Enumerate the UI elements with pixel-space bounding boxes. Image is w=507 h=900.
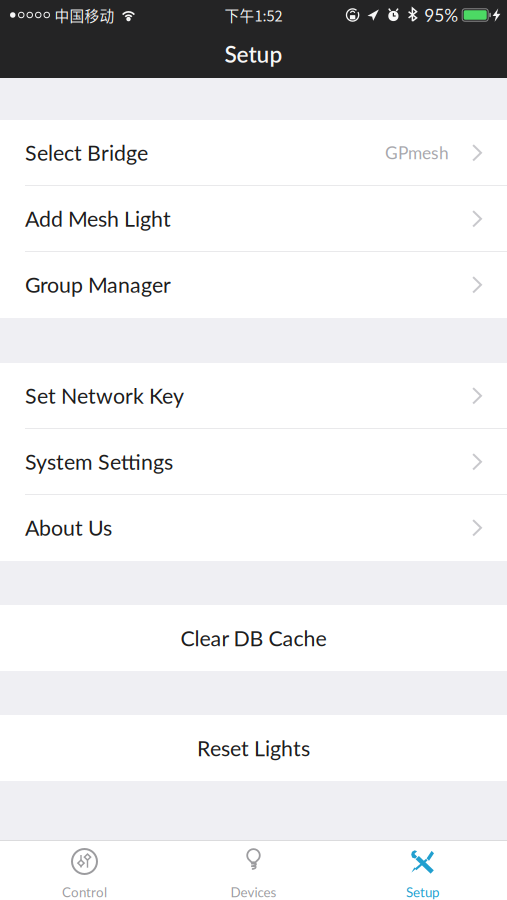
staticText: Select Bridge — [25, 140, 148, 165]
button[interactable]: Select Bridge — [0, 120, 507, 186]
staticText: Control — [62, 884, 107, 900]
staticText: 下午1:52 — [224, 4, 282, 26]
button[interactable]: Reset Lights — [0, 715, 507, 781]
button[interactable]: About Us — [0, 495, 507, 561]
button[interactable]: Devices — [169, 841, 338, 900]
staticText: 95% — [424, 5, 458, 25]
staticText: Setup — [224, 40, 282, 68]
button[interactable]: Control — [0, 841, 169, 900]
button[interactable]: System Settings — [0, 429, 507, 495]
staticText: 中国移动 — [54, 4, 114, 26]
button[interactable]: Group Manager — [0, 252, 507, 318]
button[interactable]: Add Mesh Light — [0, 186, 507, 252]
staticText: Devices — [230, 884, 276, 900]
staticText: Group Manager — [25, 272, 171, 297]
staticText: Clear DB Cache — [180, 625, 326, 651]
button[interactable]: Setup — [338, 841, 507, 900]
button[interactable]: Set Network Key — [0, 363, 507, 429]
staticText: GPmesh — [385, 142, 449, 163]
staticText: Set Network Key — [25, 383, 184, 408]
staticText: Setup — [406, 884, 439, 900]
button[interactable]: Clear DB Cache — [0, 605, 507, 671]
staticText: System Settings — [25, 449, 173, 474]
staticText: Add Mesh Light — [25, 206, 171, 231]
staticText: About Us — [25, 515, 112, 540]
staticText: Reset Lights — [197, 735, 310, 761]
